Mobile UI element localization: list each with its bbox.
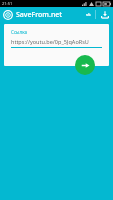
button[interactable]: Downloads: [99, 9, 110, 20]
button[interactable]: Ссылка: [4, 24, 109, 66]
staticText: 21:51: [2, 1, 13, 6]
staticText: SaveFrom.net: [16, 10, 84, 20]
staticText: https://youtu.be/0p_5JqAoRsU: [11, 38, 89, 45]
button[interactable]: SaveFrom.net logo: [3, 10, 13, 20]
staticText: Ссылка: [11, 29, 27, 35]
button[interactable]: Continue: [75, 55, 95, 75]
staticText: vk: [86, 12, 91, 17]
button[interactable]: Site selector: [84, 10, 93, 19]
